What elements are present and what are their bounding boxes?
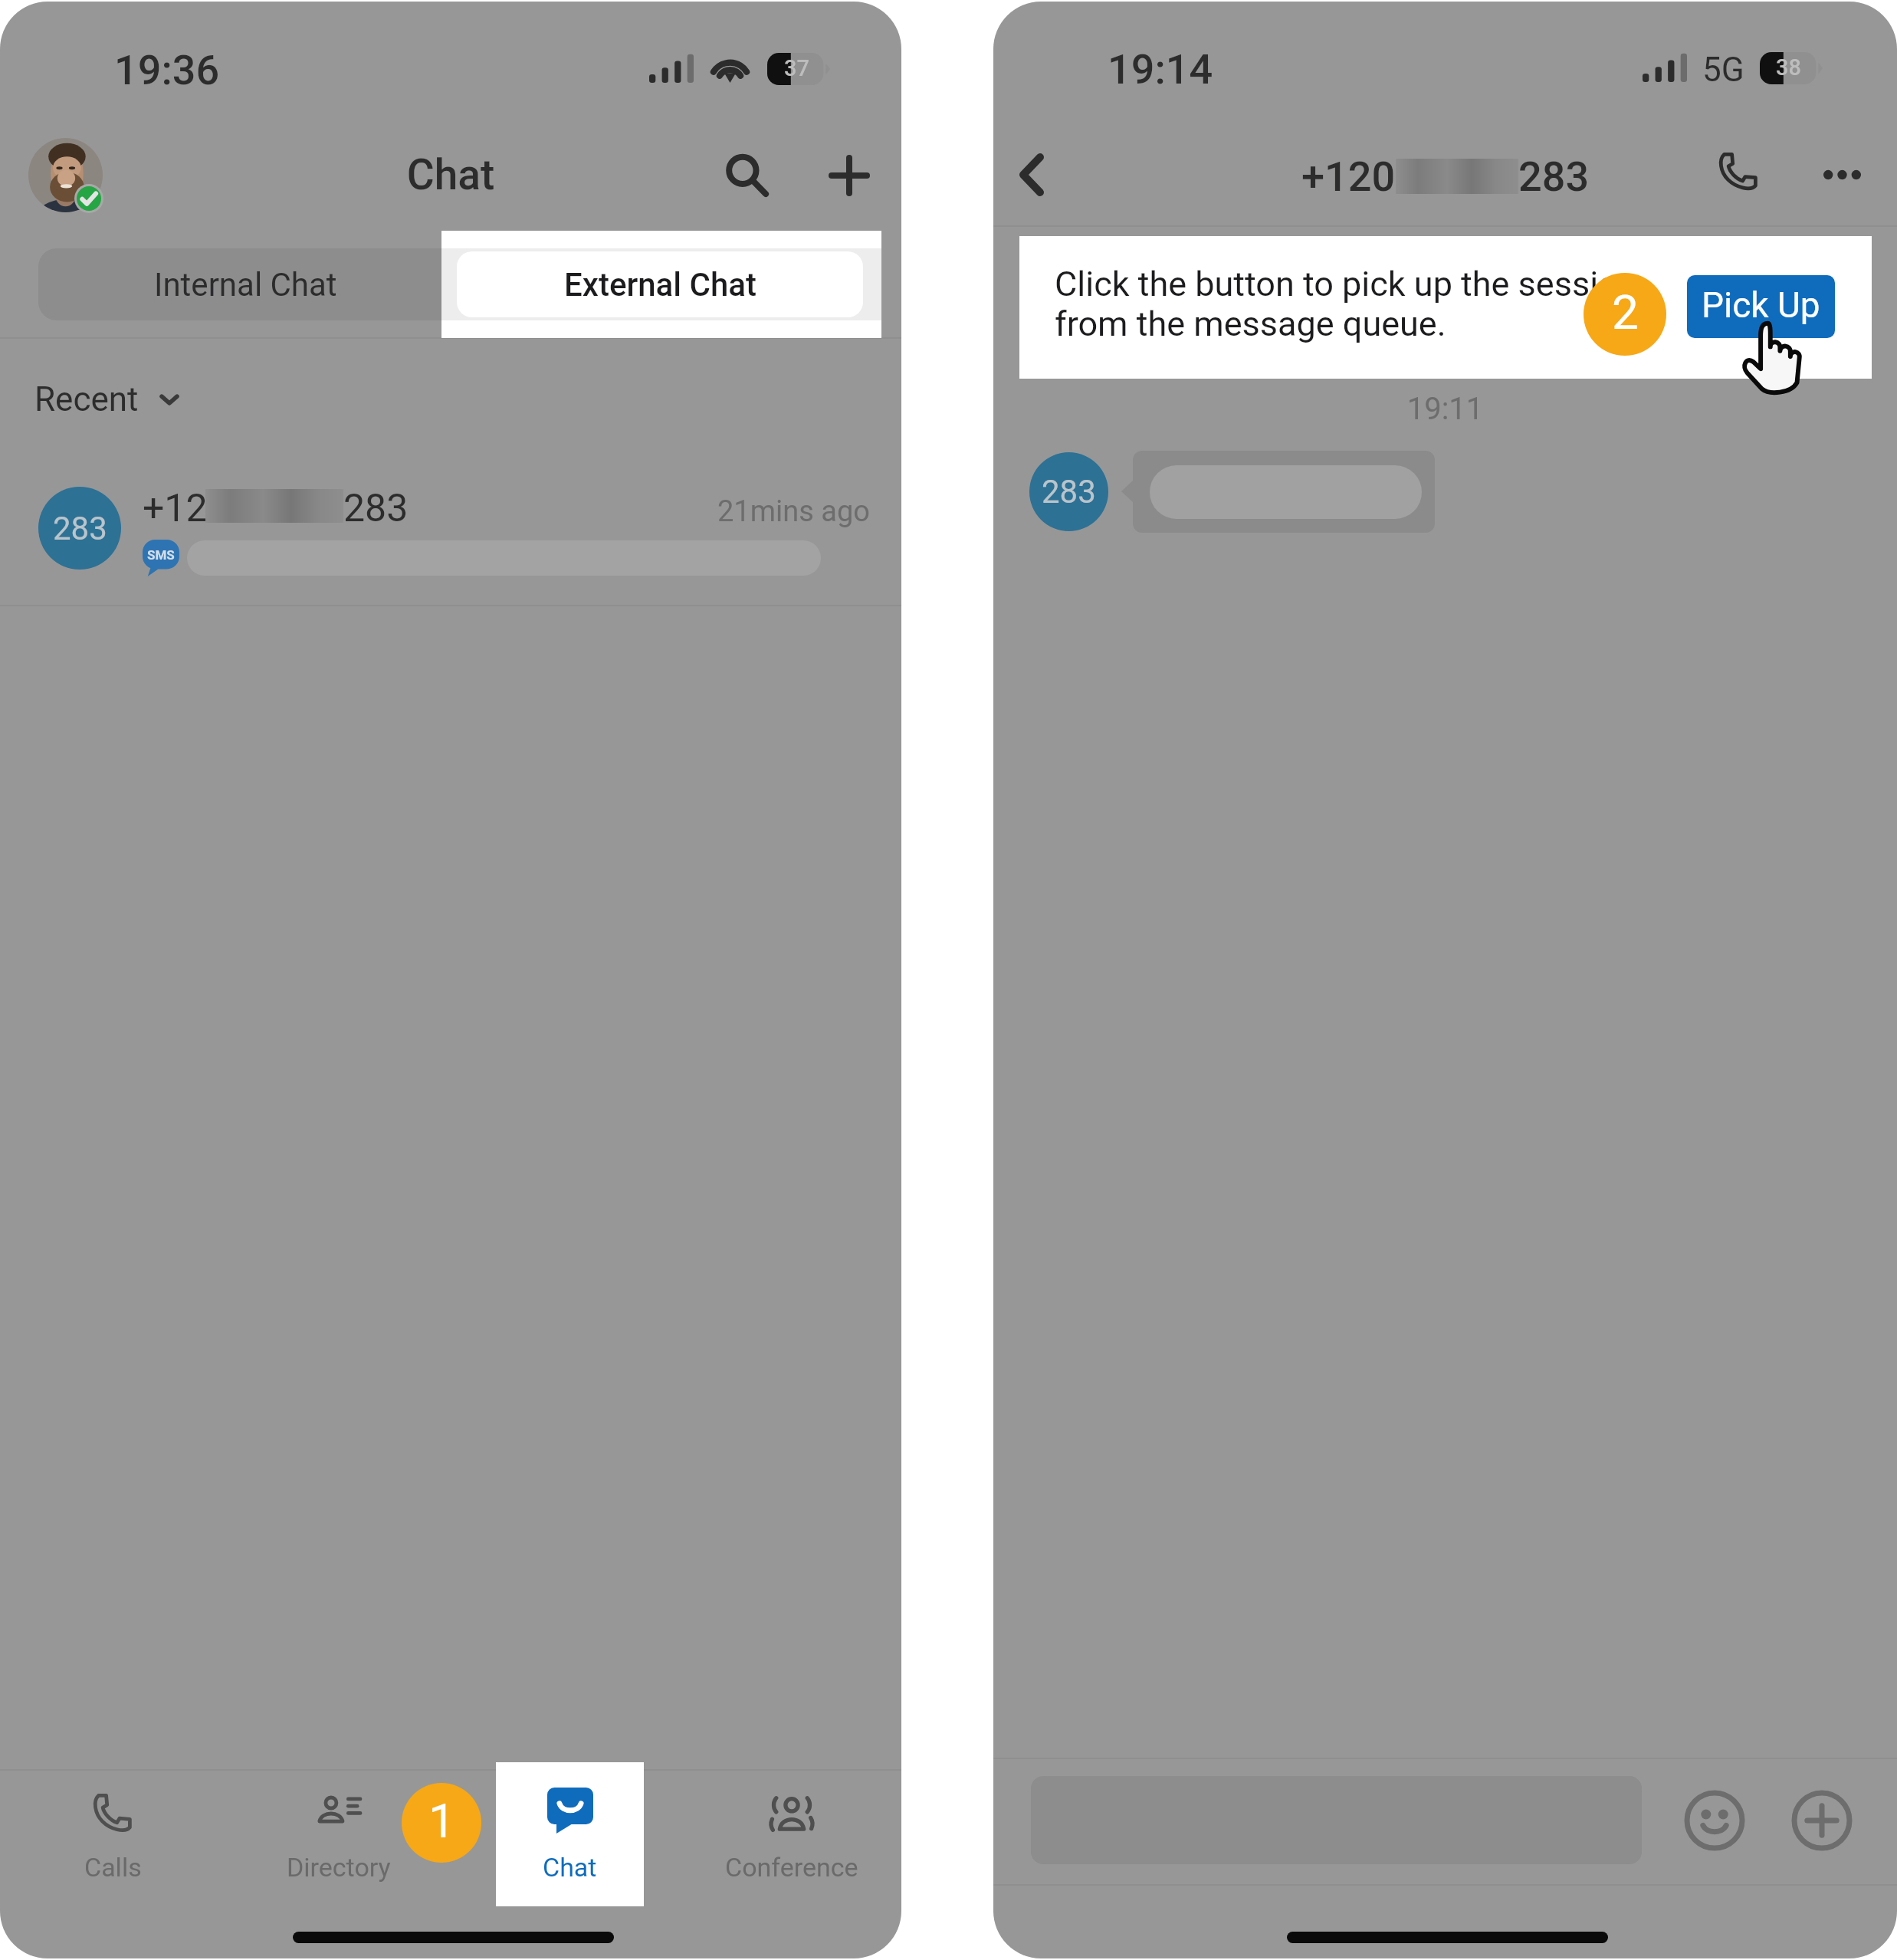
- button[interactable]: Pick Up: [1687, 275, 1835, 338]
- button[interactable]: Internal Chat: [38, 248, 452, 320]
- staticText: External Chat: [564, 266, 757, 304]
- button[interactable]: Back: [995, 138, 1068, 212]
- staticText: Click the button to pick up the session …: [1055, 264, 1637, 344]
- button[interactable]: Chat: [496, 1762, 644, 1906]
- staticText: 283: [1518, 153, 1590, 201]
- staticText: 283: [53, 510, 107, 547]
- button[interactable]: External Chat: [457, 251, 863, 317]
- button[interactable]: Recent: [34, 367, 179, 432]
- button[interactable]: Directory: [228, 1771, 450, 1907]
- button[interactable]: 283: [0, 454, 901, 606]
- button[interactable]: More options: [1805, 139, 1879, 212]
- button[interactable]: Calls: [2, 1771, 224, 1907]
- staticText: 1: [428, 1793, 455, 1849]
- staticText: 19:11: [993, 391, 1897, 427]
- button[interactable]: New chat: [812, 139, 886, 212]
- button[interactable]: Call: [1702, 135, 1775, 208]
- staticText: 283: [343, 486, 409, 531]
- button[interactable]: Emoji: [1684, 1790, 1745, 1851]
- staticText: 19:14: [1108, 45, 1213, 94]
- staticText: Chat: [543, 1852, 597, 1883]
- button[interactable]: Search: [711, 139, 784, 212]
- button[interactable]: Conference: [681, 1771, 901, 1907]
- button[interactable]: Add attachment: [1791, 1790, 1853, 1851]
- staticText: 38: [1776, 54, 1801, 80]
- staticText: +120: [1301, 153, 1396, 201]
- staticText: Pick Up: [1702, 284, 1820, 326]
- staticText: 283: [1042, 473, 1096, 511]
- staticText: Recent: [34, 379, 139, 419]
- staticText: Directory: [287, 1852, 391, 1883]
- button[interactable]: Profile: [28, 138, 103, 212]
- staticText: SMS: [147, 547, 175, 563]
- staticText: Conference: [725, 1852, 858, 1883]
- staticText: Internal Chat: [154, 266, 337, 304]
- staticText: 2: [1612, 284, 1639, 340]
- staticText: Calls: [84, 1852, 142, 1883]
- staticText: +12: [143, 486, 208, 531]
- staticText: 21mins ago: [717, 494, 870, 529]
- staticText: Chat: [0, 150, 901, 199]
- staticText: 37: [784, 55, 809, 81]
- staticText: 5G: [1702, 50, 1744, 90]
- staticText: 19:36: [114, 46, 220, 94]
